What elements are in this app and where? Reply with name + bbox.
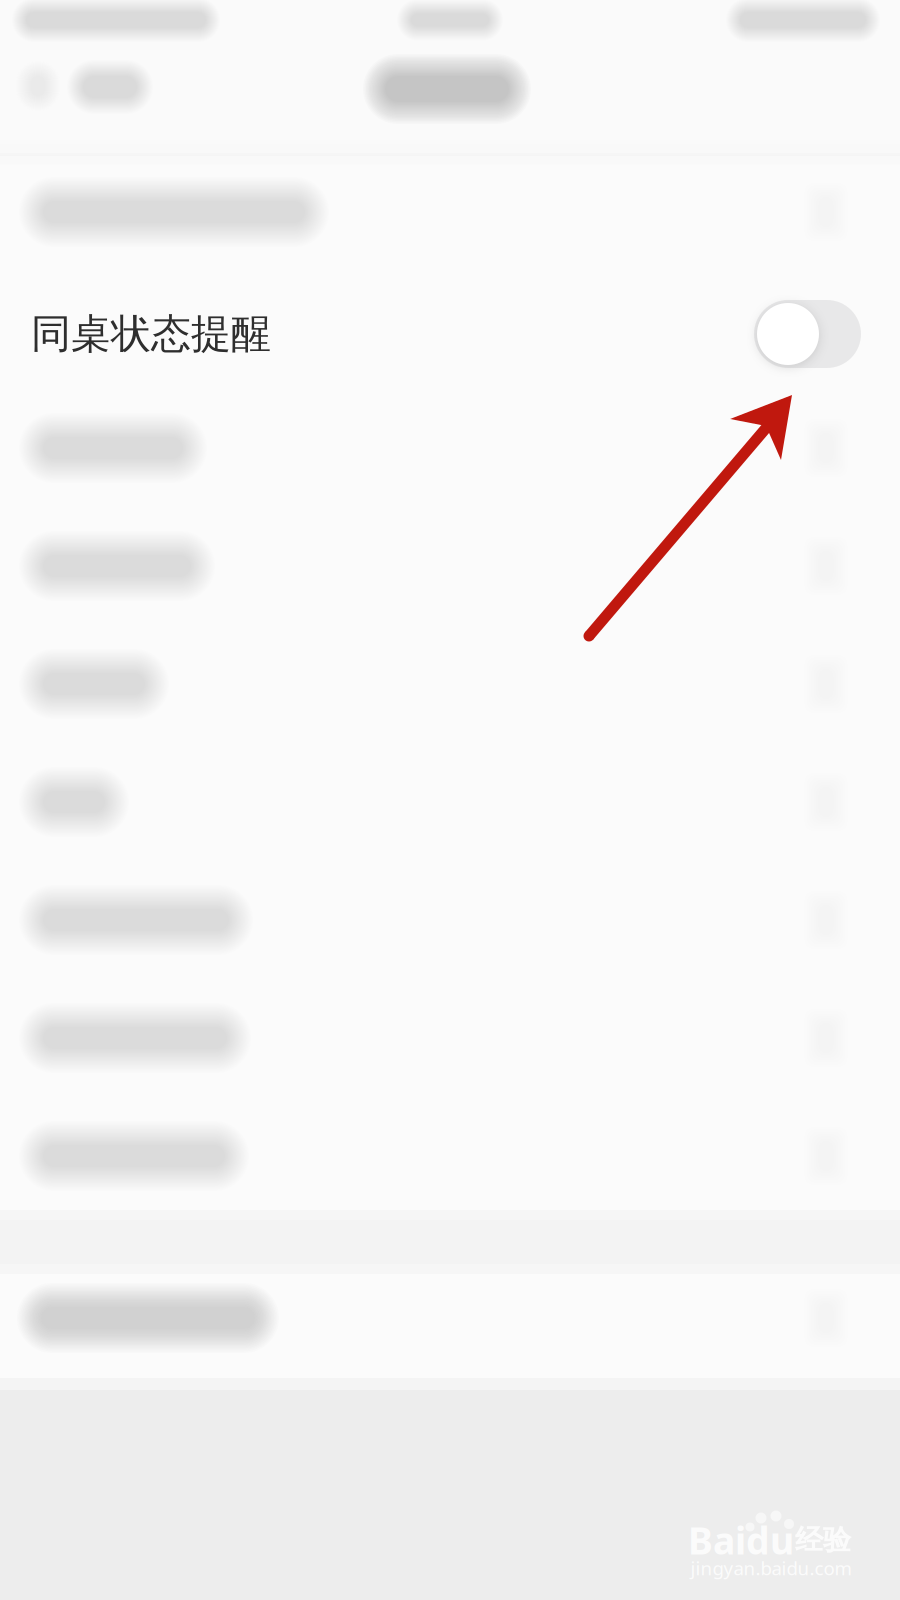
button[interactable]: Setting row 8 [0,979,900,1097]
button[interactable]: Setting row 1 [0,153,900,271]
staticText: 同桌状态提醒 [31,309,271,358]
button[interactable]: Setting row 2 [0,275,900,393]
button[interactable]: Setting row 7 [0,861,900,979]
staticText: jingyan.baidu.com [690,1556,851,1580]
button[interactable]: Setting row 9 [0,1097,900,1215]
button[interactable]: Setting row 3 [0,389,900,507]
button[interactable]: Setting row 5 [0,625,900,743]
button[interactable]: Back [5,44,195,136]
staticText: Baidu [688,1515,794,1565]
button[interactable]: Setting row 6 [0,743,900,861]
button[interactable]: 同桌状态提醒, off [754,300,861,368]
button[interactable]: Setting row 4 [0,507,900,625]
button[interactable]: Setting row 10 [0,1266,900,1378]
button[interactable]: 同桌状态提醒 [0,275,900,393]
staticText: 经验 [795,1523,851,1557]
